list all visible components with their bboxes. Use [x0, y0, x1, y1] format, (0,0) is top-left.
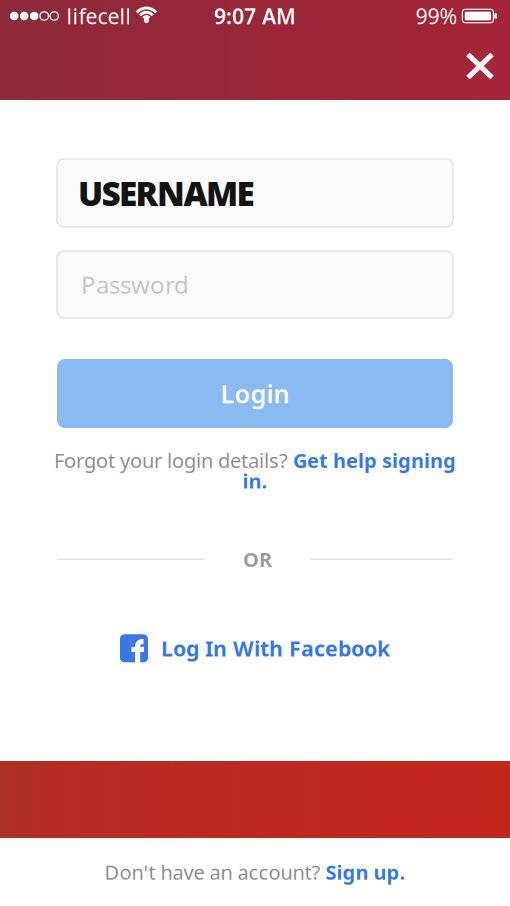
- button[interactable]: Close: [468, 54, 492, 77]
- staticText: 9:07 AM: [214, 2, 296, 30]
- button[interactable]: Get help signing: [293, 447, 456, 474]
- staticText: lifecell: [66, 2, 131, 30]
- staticText: Sign up.: [325, 859, 405, 885]
- staticText: Get help signing: [293, 447, 456, 474]
- staticText: in.: [242, 468, 267, 494]
- button[interactable]: Login: [57, 359, 453, 428]
- staticText: Log In With Facebook: [161, 634, 390, 662]
- staticText: Login: [220, 377, 289, 410]
- staticText: Password: [81, 269, 189, 300]
- staticText: Don't have an account?: [104, 859, 325, 885]
- staticText: 99%: [415, 2, 457, 30]
- button[interactable]: Password: [57, 251, 453, 318]
- staticText: OR: [243, 546, 272, 572]
- button[interactable]: USERNAME: [57, 159, 453, 227]
- staticText: Forgot your login details?: [54, 447, 293, 474]
- staticText: USERNAME: [78, 171, 254, 215]
- button[interactable]: Log In With Facebook: [120, 634, 390, 662]
- button[interactable]: in.: [242, 468, 267, 494]
- button[interactable]: Sign up.: [325, 859, 405, 885]
